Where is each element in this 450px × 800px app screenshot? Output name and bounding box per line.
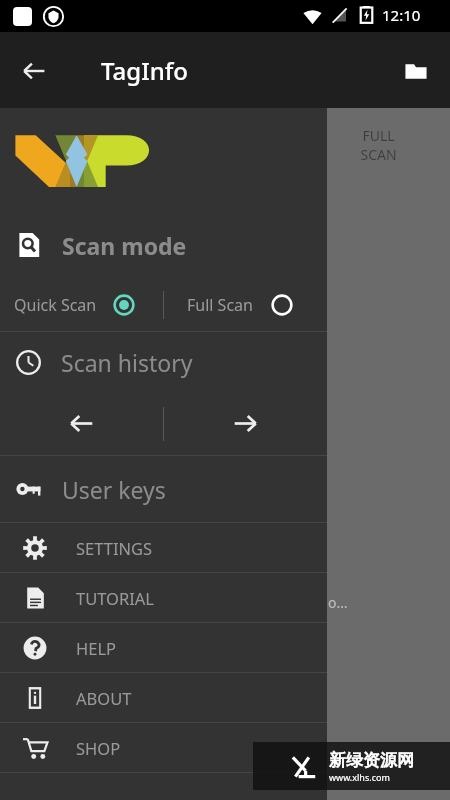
staticText: TUTORIAL — [76, 587, 155, 609]
staticText: 新绿资源网 — [329, 750, 414, 771]
staticText: Quick Scan — [14, 294, 97, 316]
button[interactable]: Open file — [396, 51, 436, 91]
button[interactable]: Next scan — [164, 392, 327, 455]
staticText: SHOP — [76, 737, 121, 759]
staticText: Scan mode — [62, 230, 187, 261]
staticText: o… — [328, 593, 348, 612]
button[interactable]: SHOP — [0, 723, 327, 772]
button[interactable]: HELP — [0, 623, 327, 672]
staticText: Scan history — [61, 347, 193, 378]
staticText: FULL SCAN — [360, 126, 397, 164]
staticText: HELP — [76, 637, 117, 659]
staticText: SETTINGS — [76, 537, 153, 559]
button[interactable]: ABOUT — [0, 673, 327, 722]
button[interactable]: User keys — [0, 456, 327, 522]
button[interactable]: Scan history — [0, 332, 327, 392]
staticText: ABOUT — [76, 687, 132, 709]
staticText: www.xlhs.com — [329, 771, 390, 783]
button[interactable]: Scan mode — [0, 212, 327, 278]
button[interactable]: Quick Scan — [0, 278, 163, 331]
button[interactable]: Back — [14, 51, 54, 91]
button[interactable]: Previous scan — [0, 392, 163, 455]
staticText: TagInfo — [101, 54, 188, 87]
button[interactable]: TUTORIAL — [0, 573, 327, 622]
button[interactable]: Full Scan — [164, 278, 327, 331]
staticText: 12:10 — [382, 5, 421, 25]
staticText: Full Scan — [187, 294, 253, 316]
button[interactable]: SETTINGS — [0, 523, 327, 572]
staticText: User keys — [62, 474, 166, 505]
